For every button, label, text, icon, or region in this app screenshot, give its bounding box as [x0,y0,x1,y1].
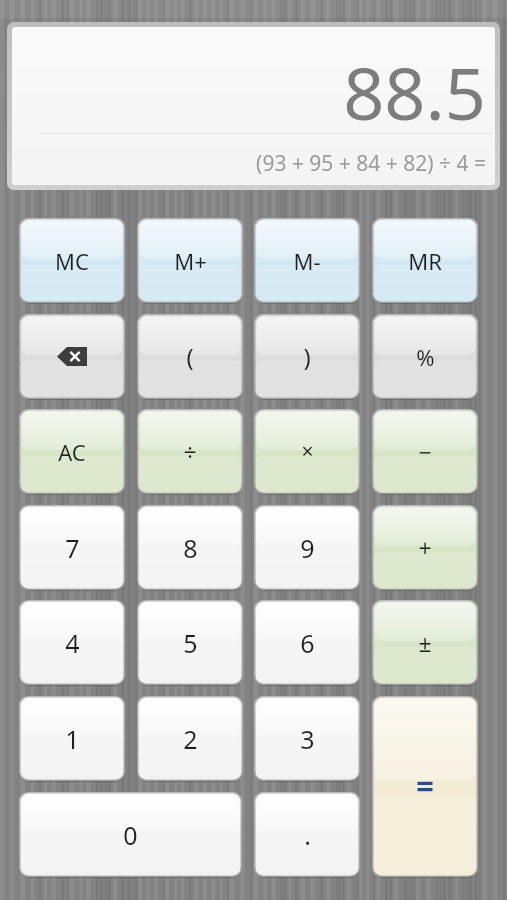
staticText: × [301,437,314,466]
staticText: M- [293,246,321,276]
staticText: 7 [65,531,80,565]
staticText: 0 [123,818,138,852]
staticText: AC [58,437,86,467]
staticText: 6 [300,626,315,660]
staticText: 1 [65,722,80,756]
button[interactable]: Backspace [19,314,125,399]
button[interactable]: 8 [137,505,243,590]
button[interactable]: ± [372,600,478,685]
button[interactable]: MC [19,218,125,303]
staticText: % [416,342,435,372]
staticText: 2 [183,722,198,756]
staticText: ( [186,340,194,373]
button[interactable]: MR [372,218,478,303]
button[interactable]: 7 [19,505,125,590]
button[interactable]: + [372,505,478,590]
button[interactable]: M+ [137,218,243,303]
staticText: + [418,532,432,563]
staticText: 9 [300,531,315,565]
button[interactable]: 0 [19,792,242,877]
staticText: ) [303,340,311,373]
button[interactable]: Equals [372,696,478,877]
button[interactable]: 9 [254,505,360,590]
staticText: ± [418,627,432,658]
staticText: MR [408,246,442,276]
button[interactable]: . [254,792,360,877]
button[interactable]: − [372,409,478,494]
button[interactable]: 6 [254,600,360,685]
staticText: ÷ [183,436,197,467]
button[interactable]: ÷ [137,409,243,494]
staticText: 3 [300,722,315,756]
staticText: − [418,436,432,467]
button[interactable]: 4 [19,600,125,685]
button[interactable]: M- [254,218,360,303]
button[interactable]: % [372,314,478,399]
button[interactable]: AC [19,409,125,494]
button[interactable]: 2 [137,696,243,781]
staticText: M+ [174,246,207,276]
staticText: 8 [183,531,198,565]
button[interactable]: 5 [137,600,243,685]
button[interactable]: × [254,409,360,494]
staticText: (93 + 95 + 84 + 82) ÷ 4 = [12,149,486,197]
button[interactable]: ( [137,314,243,399]
staticText: . [304,818,311,852]
staticText: 5 [183,626,198,660]
button[interactable]: 1 [19,696,125,781]
button[interactable]: ) [254,314,360,399]
staticText: MC [55,246,89,276]
button[interactable]: 3 [254,696,360,781]
staticText: 88.5 [343,43,486,141]
staticText: 4 [65,626,80,660]
